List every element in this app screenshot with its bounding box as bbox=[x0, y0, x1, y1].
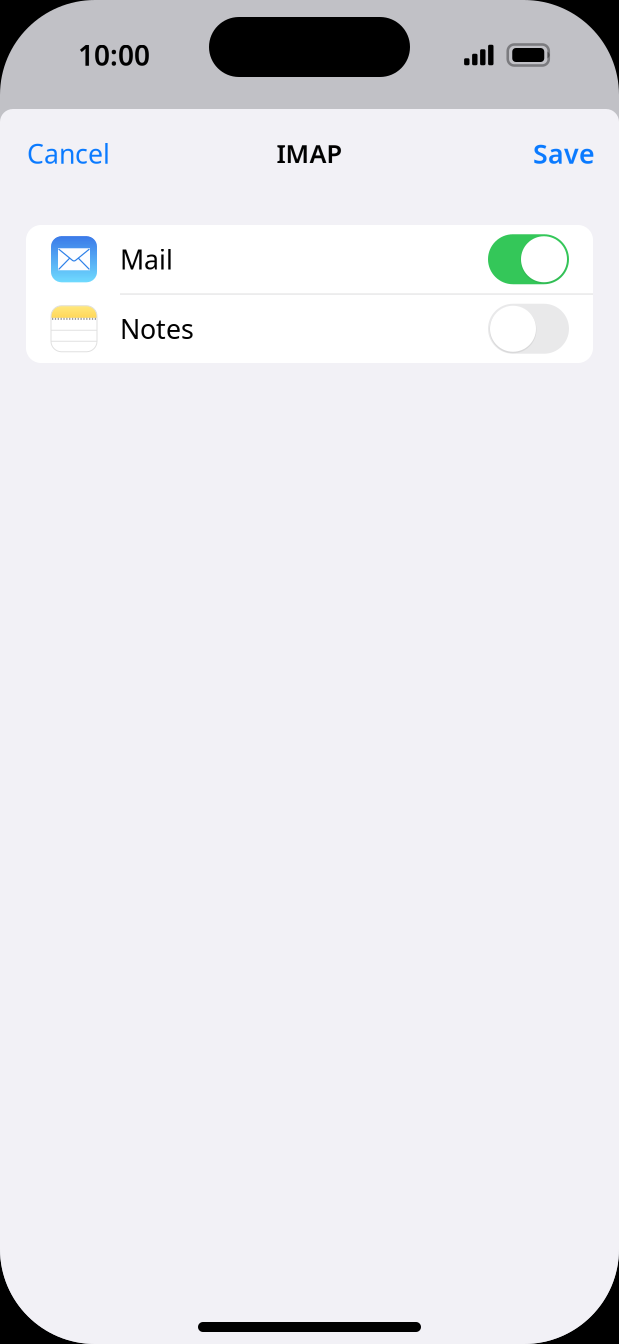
staticText: 10:00 bbox=[78, 36, 150, 74]
staticText: Notes bbox=[120, 311, 194, 346]
staticText: Save bbox=[533, 136, 595, 171]
button[interactable]: Mail bbox=[26, 225, 593, 293]
button[interactable]: Notes bbox=[26, 294, 593, 363]
staticText: Cancel bbox=[27, 136, 110, 171]
staticText: Mail bbox=[120, 241, 173, 277]
staticText: IMAP bbox=[276, 137, 342, 170]
button[interactable]: Save bbox=[519, 122, 619, 182]
button[interactable]: Cancel bbox=[0, 122, 124, 182]
